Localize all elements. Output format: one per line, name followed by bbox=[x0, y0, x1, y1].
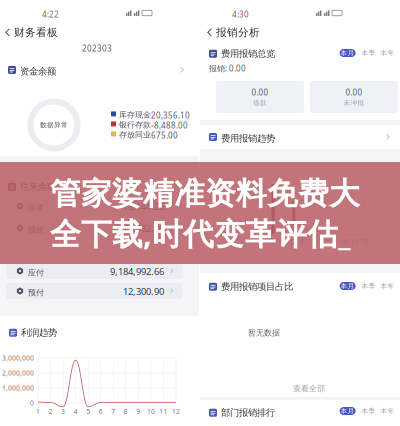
staticText: 部门报销排行 bbox=[221, 407, 275, 418]
button[interactable]: 查看全部 bbox=[292, 384, 326, 393]
staticText: 4 bbox=[74, 407, 78, 416]
staticText: 2 bbox=[259, 237, 263, 246]
staticText: 7 bbox=[311, 237, 315, 246]
staticText: 3 bbox=[61, 407, 65, 416]
staticText: 费用报销项目占比 bbox=[221, 281, 293, 292]
staticText: 12 bbox=[360, 237, 368, 246]
staticText: 本年 bbox=[381, 407, 395, 415]
staticText: 应付 bbox=[28, 268, 44, 277]
staticText: 3,000,000 bbox=[2, 354, 34, 362]
staticText: 1 bbox=[249, 237, 253, 246]
staticText: 本月 bbox=[341, 407, 355, 415]
button[interactable]: 本月 bbox=[340, 407, 356, 415]
button[interactable]: 本季 bbox=[362, 407, 376, 415]
staticText: 9 bbox=[136, 407, 140, 416]
staticText: 预付 bbox=[28, 288, 44, 297]
staticText: 5 bbox=[86, 407, 90, 416]
staticText: -8,488.00 bbox=[151, 120, 188, 131]
staticText: 675.00 bbox=[151, 130, 178, 141]
staticText: 10 bbox=[340, 237, 348, 246]
staticText: -13,144.25 bbox=[120, 200, 164, 212]
staticText: 1 bbox=[36, 407, 40, 416]
button[interactable]: 本月 bbox=[340, 49, 356, 57]
staticText: 6 bbox=[99, 407, 103, 416]
staticText: 1,000,000 bbox=[2, 384, 34, 392]
staticText: 7 bbox=[111, 407, 115, 416]
staticText: 4:30 bbox=[232, 9, 249, 20]
staticText: 0 bbox=[30, 399, 34, 407]
staticText: 报销分析 bbox=[216, 26, 260, 39]
staticText: 0.00 bbox=[251, 87, 268, 98]
staticText: 应收 bbox=[28, 203, 44, 212]
button[interactable]: 本年 bbox=[381, 407, 395, 415]
staticText: 报销: 0.00 bbox=[209, 63, 246, 74]
staticText: 本年 bbox=[381, 49, 395, 57]
staticText: 2,000,000 bbox=[2, 369, 34, 377]
staticText: 本季 bbox=[362, 407, 376, 415]
staticText: 4:22 bbox=[42, 9, 59, 20]
staticText: 银行存款 bbox=[119, 120, 151, 130]
button[interactable]: 资金余额 bbox=[0, 60, 190, 80]
staticText: 费用报销总览 bbox=[221, 48, 275, 59]
staticText: 本月 bbox=[341, 49, 355, 57]
staticText: 9,184,992.66 bbox=[110, 265, 164, 277]
staticText: 6 bbox=[301, 237, 305, 246]
button[interactable]: 财务看板 bbox=[5, 27, 85, 38]
staticText: 查看全部 bbox=[293, 384, 325, 393]
staticText: 2 bbox=[48, 407, 52, 416]
button[interactable]: 本年 bbox=[381, 49, 395, 57]
staticText: 财务看板 bbox=[14, 26, 58, 39]
staticText: 费用报销趋势 bbox=[221, 133, 275, 144]
button[interactable]: 预付 bbox=[6, 283, 182, 299]
staticText: 本月 bbox=[341, 282, 355, 290]
staticText: 4 bbox=[280, 237, 284, 246]
staticText: 资金余额 bbox=[20, 66, 56, 77]
staticText: 借款 bbox=[253, 99, 267, 107]
staticText: 0.00 bbox=[345, 87, 362, 98]
staticText: 本年 bbox=[381, 282, 395, 290]
staticText: 利润趋势 bbox=[21, 327, 57, 338]
staticText: 12,300.90 bbox=[123, 285, 164, 297]
staticText: 11 bbox=[159, 407, 167, 416]
staticText: 预收 bbox=[28, 225, 44, 234]
staticText: 8 bbox=[124, 407, 128, 416]
staticText: 全下载,时代变革评估_ bbox=[50, 213, 351, 254]
button[interactable]: 费用报销趋势 bbox=[200, 125, 400, 149]
staticText: 未冲抵 bbox=[343, 99, 364, 107]
staticText: 暂无数据 bbox=[248, 328, 280, 338]
staticText: 8 bbox=[321, 237, 325, 246]
staticText: 20,356.10 bbox=[151, 110, 190, 121]
button[interactable]: 应付 bbox=[6, 263, 182, 279]
button[interactable]: 本月 bbox=[340, 282, 356, 290]
staticText: 202303 bbox=[82, 43, 112, 54]
staticText: 本季 bbox=[362, 282, 376, 290]
button[interactable]: 本季 bbox=[362, 49, 376, 57]
button[interactable]: 本季 bbox=[362, 282, 376, 290]
button[interactable]: 预收 bbox=[6, 220, 182, 236]
staticText: 管家婆精准资料免费大 bbox=[50, 175, 360, 213]
button[interactable]: 报销分析 bbox=[207, 27, 287, 38]
button[interactable]: 本年 bbox=[381, 282, 395, 290]
staticText: 12 bbox=[172, 407, 180, 416]
staticText: -75,432.20 bbox=[120, 222, 164, 234]
staticText: 数据异常 bbox=[40, 121, 68, 129]
staticText: 存放同业 bbox=[119, 130, 151, 140]
staticText: 10 bbox=[147, 407, 155, 416]
staticText: 3 bbox=[270, 237, 274, 246]
staticText: 5 bbox=[290, 237, 294, 246]
staticText: 9 bbox=[331, 237, 335, 246]
staticText: 库存现金 bbox=[119, 110, 151, 120]
staticText: 往来余额 bbox=[20, 181, 56, 192]
button[interactable]: 应收 bbox=[6, 198, 182, 214]
staticText: 本季 bbox=[362, 49, 376, 57]
